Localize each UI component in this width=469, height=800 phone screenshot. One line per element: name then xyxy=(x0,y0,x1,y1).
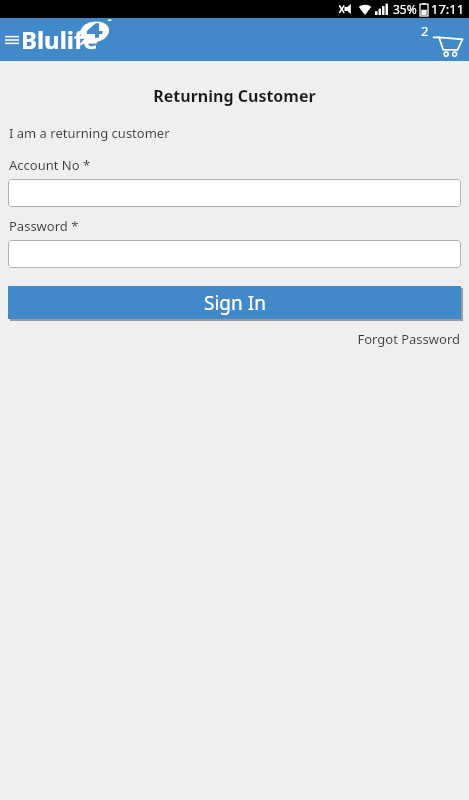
other: Menu xyxy=(5,34,19,46)
button[interactable]: Menu xyxy=(5,23,98,56)
staticText: 2 xyxy=(421,22,429,40)
staticText: Account No * xyxy=(9,156,91,174)
staticText: Returning Customer xyxy=(0,85,469,107)
staticText: 17:11 xyxy=(431,0,465,18)
button[interactable]: Sign In xyxy=(8,286,461,319)
staticText: Sign In xyxy=(204,290,266,316)
staticText: Blulife xyxy=(21,23,98,56)
staticText: 35% xyxy=(393,1,417,17)
button[interactable] xyxy=(8,240,461,268)
button[interactable]: Forgot Password xyxy=(0,330,469,348)
staticText: I am a returning customer xyxy=(9,124,170,142)
button[interactable]: Cart, 2 items xyxy=(417,20,463,60)
button[interactable] xyxy=(8,179,461,207)
staticText: Password * xyxy=(9,217,79,235)
